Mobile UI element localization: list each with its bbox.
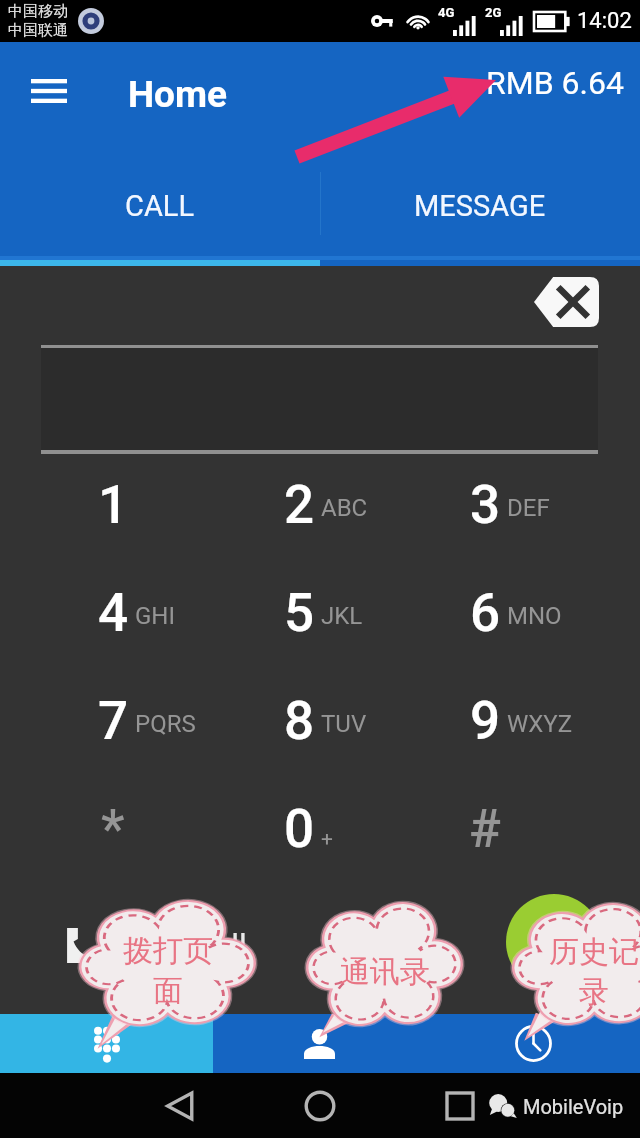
button[interactable] [41,345,598,454]
button[interactable]: 4 [20,559,206,667]
staticText: 中国移动 [8,2,68,21]
staticText: 7 [98,690,129,752]
button[interactable]: MESSAGE [320,163,640,248]
staticText: 1 [98,474,129,536]
button[interactable]: Backspace [528,271,605,333]
staticText: 14:02 [577,8,632,34]
staticText: 6 [470,582,501,644]
button[interactable]: Dialpad [0,1014,213,1073]
button[interactable]: Recents [428,1074,492,1138]
button[interactable]: 7 [20,667,206,775]
button[interactable]: RMB 6.64 [486,64,624,102]
button[interactable]: 0 [206,775,392,883]
staticText: 历史记 录 [549,933,639,1011]
staticText: 2G [485,5,502,20]
staticText: 5 [284,582,315,644]
button[interactable]: 8 [206,667,392,775]
staticText: TUV [321,710,367,738]
staticText: GHI [135,602,175,630]
staticText: CALL [125,189,195,223]
staticText: 4G [438,5,455,20]
staticText: 8 [284,690,315,752]
button[interactable]: 3 [392,451,578,559]
staticText: JKL [321,602,363,630]
staticText: 0 [284,798,315,860]
button[interactable]: CALL [0,163,320,248]
button[interactable] [306,902,463,1026]
button[interactable]: History [426,1014,640,1073]
button[interactable]: 9 [392,667,578,775]
button[interactable] [512,903,640,1025]
button[interactable]: * [20,775,206,883]
staticText: + [321,827,333,852]
staticText: RMB 6.64 [486,64,624,102]
staticText: WXYZ [507,710,573,738]
staticText: Home [128,73,228,116]
staticText: 中国联通 [8,21,68,40]
staticText: 2 [284,474,315,536]
staticText: * [101,798,125,860]
button[interactable]: Menu [18,60,80,122]
staticText: MobileVoip [523,1095,624,1118]
staticText: # [469,798,501,860]
button[interactable]: 1 [20,451,206,559]
staticText: 拨打页 面 [123,932,213,1010]
button[interactable]: # [392,775,578,883]
button[interactable]: 6 [392,559,578,667]
staticText: MNO [507,602,562,630]
staticText: PQRS [135,710,196,738]
button[interactable] [79,900,256,1026]
staticText: 4 [98,582,129,644]
staticText: VOIP Call [114,926,247,964]
staticText: DEF [507,494,550,522]
button[interactable]: Back [148,1074,212,1138]
button[interactable]: Contacts [213,1014,426,1073]
staticText: 通讯录 [340,953,430,991]
button[interactable]: 2 [206,451,392,559]
button[interactable]: 5 [206,559,392,667]
button[interactable]: Call [506,894,602,990]
button[interactable]: Home [288,1074,352,1138]
staticText: 3 [470,474,501,536]
staticText: 9 [470,690,501,752]
staticText: MESSAGE [414,189,546,223]
staticText: ABC [321,494,368,522]
